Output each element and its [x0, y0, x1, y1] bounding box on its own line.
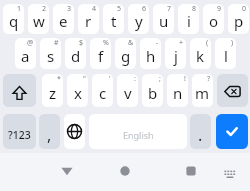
staticText: %	[103, 38, 109, 48]
staticText: f	[98, 46, 104, 66]
staticText: (	[206, 38, 209, 48]
staticText: x	[74, 83, 82, 103]
staticText: k	[196, 46, 205, 66]
staticText: ?	[207, 74, 211, 84]
staticText: 1	[17, 4, 22, 14]
button[interactable]: l	[215, 38, 236, 69]
button[interactable]	[217, 74, 248, 107]
button[interactable]: i	[178, 4, 199, 34]
staticText: y	[135, 11, 143, 31]
button[interactable]: f	[90, 38, 111, 69]
button[interactable]: c	[92, 74, 113, 107]
staticText: l	[224, 46, 228, 66]
staticText: t	[111, 11, 117, 31]
button[interactable]: u	[153, 4, 174, 34]
staticText: r	[85, 11, 92, 31]
button[interactable]: n	[167, 74, 188, 107]
button[interactable]	[180, 160, 202, 182]
button[interactable]: h	[140, 38, 161, 69]
button[interactable]	[56, 160, 78, 182]
staticText: g	[121, 46, 131, 66]
staticText: n	[173, 83, 183, 103]
staticText: $	[79, 38, 84, 48]
staticText: !	[184, 74, 186, 84]
staticText: 4	[92, 4, 97, 14]
staticText: "	[83, 74, 86, 84]
staticText: u	[159, 11, 169, 31]
staticText: 8	[192, 4, 197, 14]
staticText: i	[187, 11, 191, 31]
staticText: :	[134, 74, 136, 84]
staticText: 5	[117, 4, 122, 14]
button[interactable]: ?123	[3, 114, 36, 149]
staticText: z	[49, 83, 57, 103]
staticText: s	[47, 46, 55, 66]
button[interactable]: t	[103, 4, 124, 34]
button[interactable]: ,	[39, 114, 60, 149]
staticText: m	[195, 83, 210, 103]
button[interactable]: e	[53, 4, 74, 34]
staticText: ?123	[8, 128, 31, 142]
staticText: v	[124, 83, 132, 103]
staticText: a	[21, 46, 30, 66]
button[interactable]: j	[165, 38, 186, 69]
button[interactable]: m	[192, 74, 213, 107]
staticText: 9	[217, 4, 222, 14]
button[interactable]: v	[117, 74, 138, 107]
button[interactable]: y	[128, 4, 149, 34]
button[interactable]: .	[190, 114, 211, 149]
staticText: d	[71, 46, 81, 66]
button[interactable]	[216, 114, 248, 149]
button[interactable]: English	[89, 114, 187, 149]
staticText: @	[27, 38, 34, 48]
button[interactable]: p	[228, 4, 249, 34]
staticText: o	[209, 11, 219, 31]
button[interactable]: q	[3, 4, 24, 34]
button[interactable]	[219, 163, 241, 185]
staticText: q	[9, 11, 19, 31]
staticText: ,	[47, 124, 52, 146]
staticText: '	[109, 74, 111, 84]
staticText: *	[57, 74, 61, 84]
staticText: English	[123, 129, 154, 141]
button[interactable]: r	[78, 4, 99, 34]
staticText: p	[234, 11, 244, 31]
button[interactable]: b	[142, 74, 163, 107]
button[interactable]: z	[42, 74, 63, 107]
button[interactable]: a	[15, 38, 36, 69]
button[interactable]	[3, 74, 36, 107]
staticText: 6	[142, 4, 147, 14]
staticText: 2	[42, 4, 47, 14]
button[interactable]: w	[28, 4, 49, 34]
staticText: b	[148, 83, 158, 103]
button[interactable]: g	[115, 38, 136, 69]
staticText: j	[174, 46, 178, 66]
staticText: +	[179, 38, 184, 48]
button[interactable]: s	[40, 38, 61, 69]
button[interactable]: k	[190, 38, 211, 69]
button[interactable]: o	[203, 4, 224, 34]
staticText: .	[198, 124, 203, 146]
button[interactable]: x	[67, 74, 88, 107]
button[interactable]: d	[65, 38, 86, 69]
staticText: h	[146, 46, 156, 66]
staticText: c	[99, 83, 107, 103]
staticText: 0	[242, 4, 247, 14]
staticText: -	[156, 38, 159, 48]
staticText: #	[54, 38, 59, 48]
staticText: 3	[67, 4, 72, 14]
staticText: ;	[159, 74, 161, 84]
button[interactable]	[114, 160, 136, 182]
staticText: w	[33, 11, 45, 31]
staticText: 7	[167, 4, 172, 14]
staticText: )	[231, 38, 234, 48]
staticText: e	[59, 11, 68, 31]
button[interactable]	[64, 114, 85, 149]
staticText: &	[128, 38, 134, 48]
